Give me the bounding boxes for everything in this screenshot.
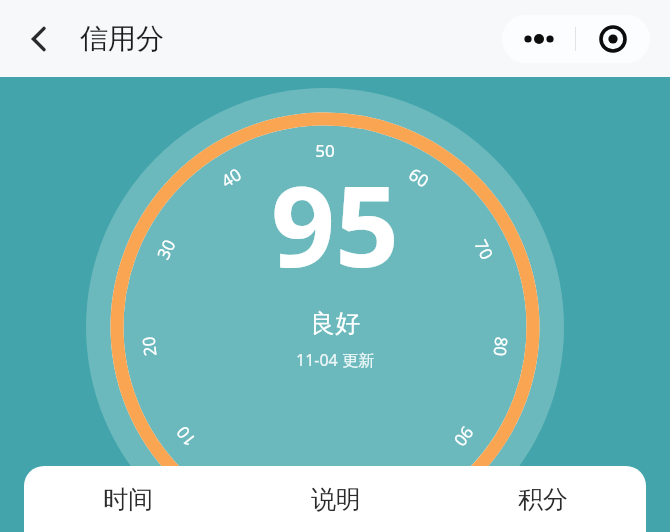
staticText: 11-04 更新 [296, 349, 374, 371]
staticText: 50 [315, 139, 335, 162]
button[interactable]: More options [502, 15, 575, 63]
button[interactable]: Back [14, 14, 64, 64]
staticText: 10 [171, 421, 201, 451]
button[interactable]: 说明 [232, 466, 439, 532]
staticText: 说明 [311, 484, 361, 515]
staticText: 40 [216, 162, 245, 192]
staticText: 70 [469, 235, 499, 264]
staticText: 信用分 [80, 21, 164, 56]
staticText: 95 [271, 147, 400, 300]
staticText: 80 [488, 335, 513, 358]
button[interactable]: 时间 [24, 466, 232, 532]
button[interactable]: Close [576, 15, 650, 63]
staticText: 良好 [310, 308, 360, 339]
staticText: 积分 [518, 484, 568, 515]
staticText: 90 [449, 421, 479, 451]
button[interactable]: 积分 [439, 466, 646, 532]
staticText: 30 [151, 235, 181, 264]
staticText: 60 [404, 162, 433, 192]
staticText: 20 [136, 335, 161, 358]
staticText: 时间 [103, 484, 153, 515]
